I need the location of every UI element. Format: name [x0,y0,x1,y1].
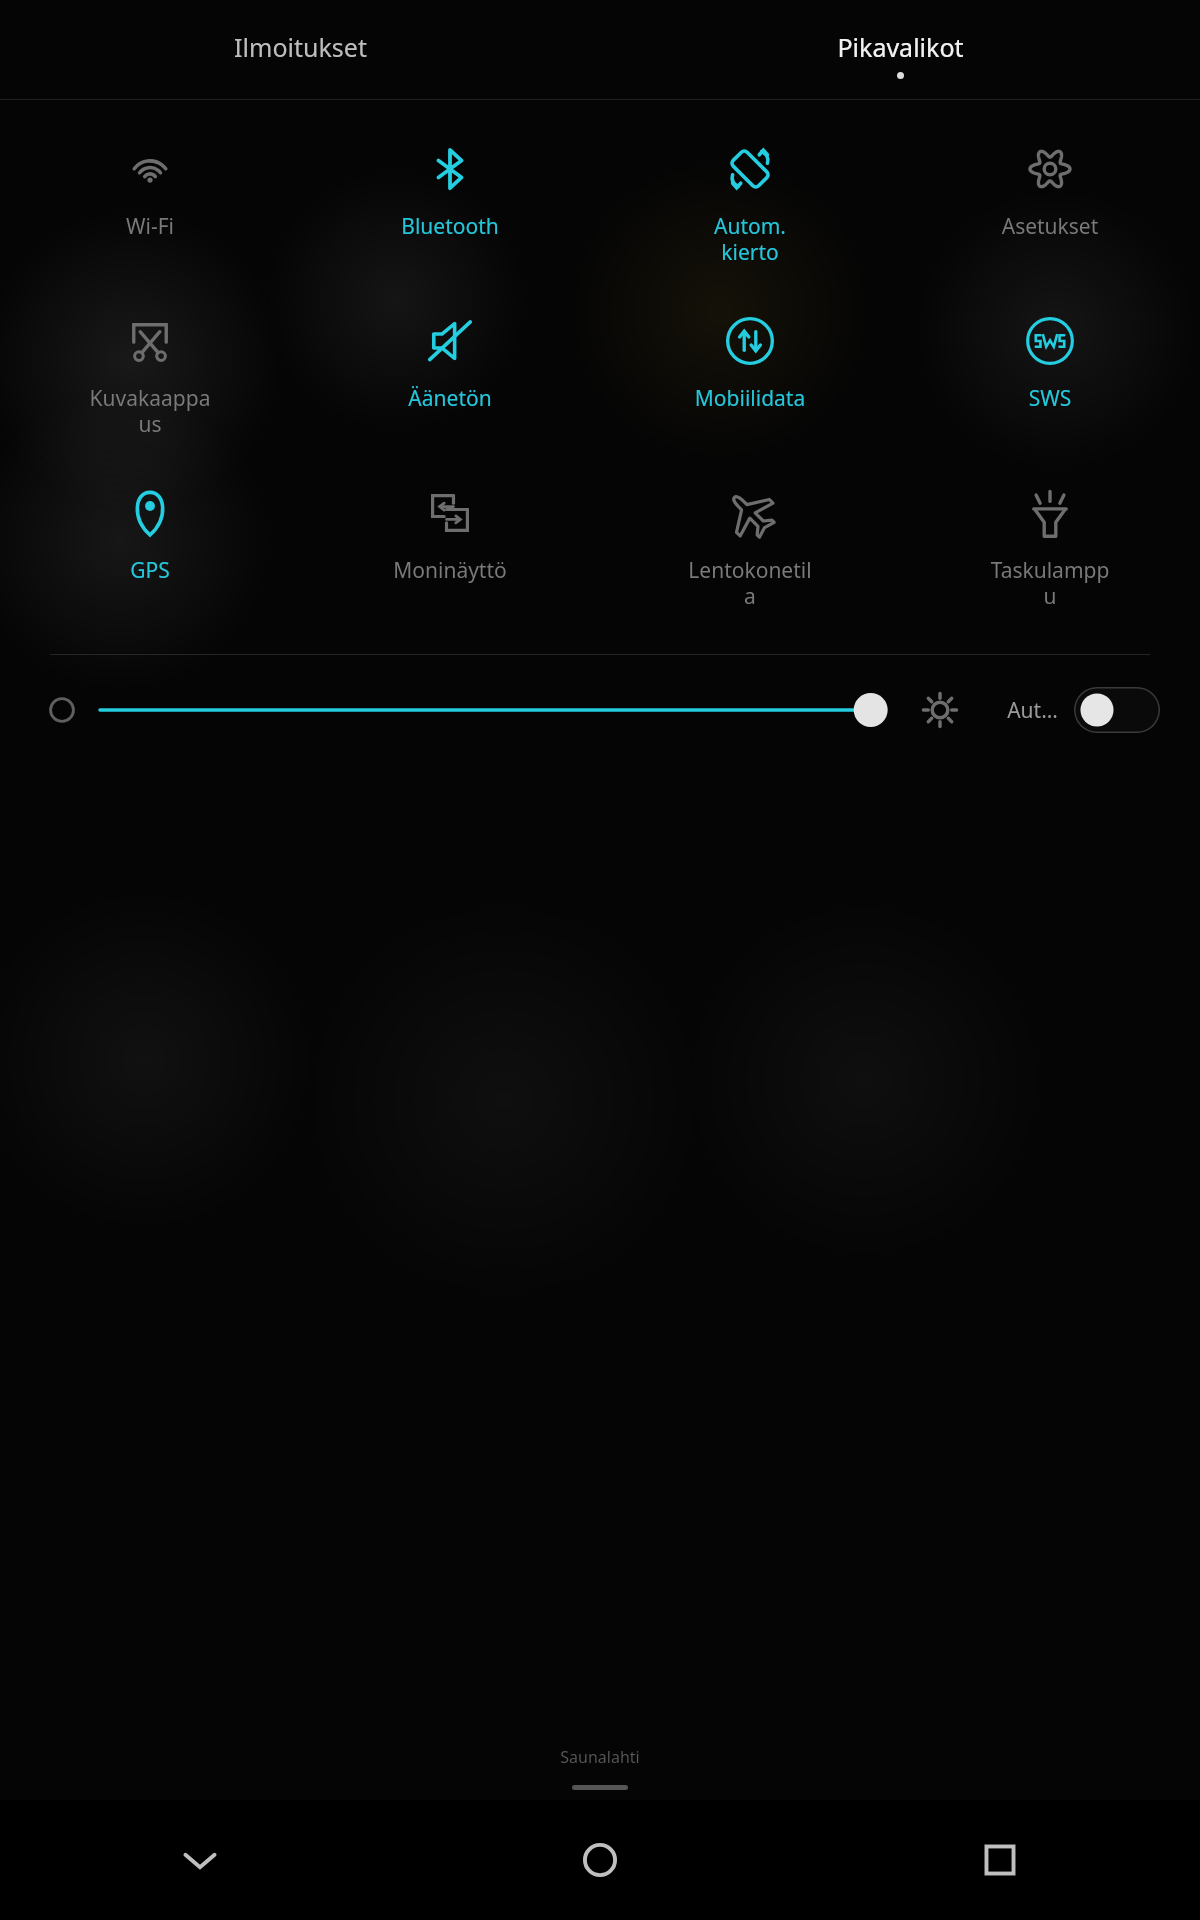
button[interactable]: Kuvakaappaus [0,294,300,466]
button[interactable]: GPS [0,466,300,638]
staticText: Wi-Fi [0,212,300,241]
button[interactable]: Pikavalikot [600,0,1200,100]
button[interactable]: Taskulamppu [900,466,1200,638]
button[interactable]: Wi-Fi [0,122,300,294]
button[interactable]: Bluetooth [300,122,600,294]
button[interactable]: Äänetön [300,294,600,466]
staticText: Mobiilidata [600,384,900,413]
staticText: Ilmoitukset [234,30,367,64]
button[interactable]: Maximum brightness [917,687,963,733]
staticText: Kuvakaappa us [0,384,300,439]
button[interactable]: Ilmoitukset [0,0,600,100]
staticText: Asetukset [900,212,1200,241]
button[interactable]: SWS [900,294,1200,466]
button[interactable]: Minimum brightness [40,688,84,732]
button[interactable]: Back [0,1800,400,1920]
button[interactable]: Asetukset [900,122,1200,294]
button[interactable]: Mobiilidata [600,294,900,466]
button[interactable]: Autom.kierto [600,122,900,294]
staticText: SWS [900,384,1200,413]
staticText: Moninäyttö [300,556,600,585]
staticText: GPS [0,556,300,585]
staticText: Lentokonetil a [600,556,900,611]
staticText: Autom. kierto [600,212,900,267]
staticText: Bluetooth [300,212,600,241]
button[interactable]: Brightness slider [100,680,907,740]
staticText: Aut… [1007,696,1058,725]
button[interactable]: Automatic brightness toggle [1074,687,1160,733]
button[interactable]: Recent apps [800,1800,1200,1920]
button[interactable]: Home [400,1800,800,1920]
staticText: Pikavalikot [837,30,964,64]
button[interactable]: Moninäyttö [300,466,600,638]
button[interactable]: Lentokonetila [600,466,900,638]
staticText: Taskulampp u [900,556,1200,611]
staticText: Äänetön [300,384,600,413]
staticText: Saunalahti [0,1746,1200,1768]
